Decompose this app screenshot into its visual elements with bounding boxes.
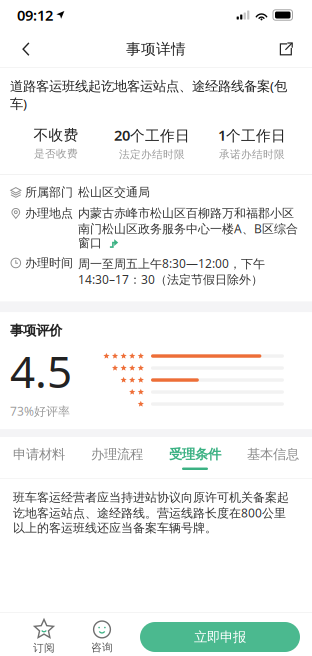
- staticText: 窗口: [78, 236, 102, 250]
- button[interactable]: 分享: [266, 30, 306, 68]
- staticText: 事项评价: [10, 322, 62, 339]
- button[interactable]: 咨询: [73, 618, 131, 656]
- staticText: 不收费: [33, 126, 78, 144]
- staticText: 受理条件: [169, 446, 221, 462]
- staticText: 法定办结时限: [119, 148, 185, 161]
- staticText: 道路客运班线起讫地客运站点、途经路线备案(包车): [10, 77, 287, 112]
- staticText: 是否收费: [34, 147, 78, 160]
- button[interactable]: 立即申报: [140, 622, 300, 652]
- staticText: 事项详情: [126, 40, 186, 58]
- staticText: 办理地点: [25, 206, 73, 221]
- staticText: 基本信息: [247, 446, 299, 462]
- button[interactable]: 基本信息: [234, 437, 312, 479]
- staticText: 立即申报: [194, 629, 246, 645]
- staticText: 内蒙古赤峰市松山区百柳路万和福郡小区南门松山区政务服务中心一楼A、B区综合: [78, 206, 298, 236]
- staticText: 4.5: [10, 342, 72, 400]
- button[interactable]: 订阅: [15, 618, 73, 656]
- staticText: 订阅: [33, 641, 55, 654]
- staticText: 09:12: [17, 5, 53, 25]
- staticText: 73%好评率: [10, 403, 70, 419]
- button[interactable]: 受理条件: [156, 437, 234, 479]
- staticText: 所属部门: [25, 185, 73, 200]
- staticText: 办理流程: [91, 446, 143, 462]
- staticText: 办理时间: [25, 256, 73, 270]
- staticText: 周一至周五上午8:30—12:00，下午14:30–17：30（法定节假日除外）: [78, 255, 265, 287]
- button[interactable]: 返回: [6, 30, 46, 68]
- button[interactable]: 办理流程: [78, 437, 156, 479]
- staticText: 申请材料: [13, 446, 65, 462]
- button[interactable]: 申请材料: [0, 437, 78, 479]
- staticText: 松山区交通局: [78, 185, 150, 199]
- staticText: 承诺办结时限: [219, 148, 285, 161]
- staticText: 20个工作日: [114, 125, 190, 145]
- staticText: 咨询: [91, 641, 113, 654]
- staticText: 班车客运经营者应当持进站协议向原许可机关备案起讫地客运站点、途经路线。营运线路长…: [13, 490, 289, 535]
- staticText: 1个工作日: [218, 125, 286, 145]
